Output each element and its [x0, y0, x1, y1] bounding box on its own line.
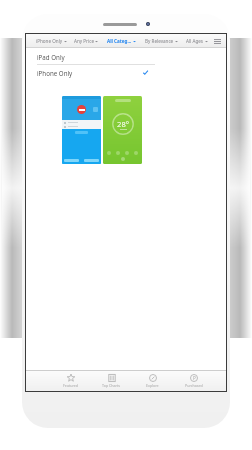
staticText: Explore	[146, 383, 159, 388]
button[interactable]: By Relevance	[141, 34, 182, 48]
staticText: Any Price	[74, 38, 94, 44]
staticText: All Ages	[186, 38, 204, 44]
staticText: By Relevance	[145, 38, 174, 44]
staticText: All Categ...	[107, 38, 132, 44]
button[interactable]	[62, 96, 101, 164]
button[interactable]: All Categ...	[102, 34, 141, 48]
staticText: Purchased	[185, 383, 203, 388]
button[interactable]: iPhone Only	[32, 34, 70, 48]
button[interactable]: Top Charts	[91, 371, 132, 391]
button[interactable]: iPhone Only	[28, 65, 155, 80]
staticText: iPhone Only	[37, 69, 73, 77]
button[interactable]: All Ages	[182, 34, 212, 48]
button[interactable]: 28°	[103, 96, 142, 164]
staticText: iPad Only	[37, 53, 65, 61]
staticText: Top Charts	[102, 383, 121, 388]
staticText: Featured	[63, 383, 79, 388]
button[interactable]: List view	[212, 34, 222, 48]
button[interactable]: Any Price	[70, 34, 102, 48]
button[interactable]: iPad Only	[28, 49, 155, 64]
staticText: 28°	[117, 119, 129, 129]
staticText: P	[193, 375, 196, 381]
button[interactable]: P	[173, 371, 214, 391]
button[interactable]: Featured	[50, 371, 91, 391]
button[interactable]: Explore	[132, 371, 173, 391]
staticText: iPhone Only	[36, 38, 63, 44]
